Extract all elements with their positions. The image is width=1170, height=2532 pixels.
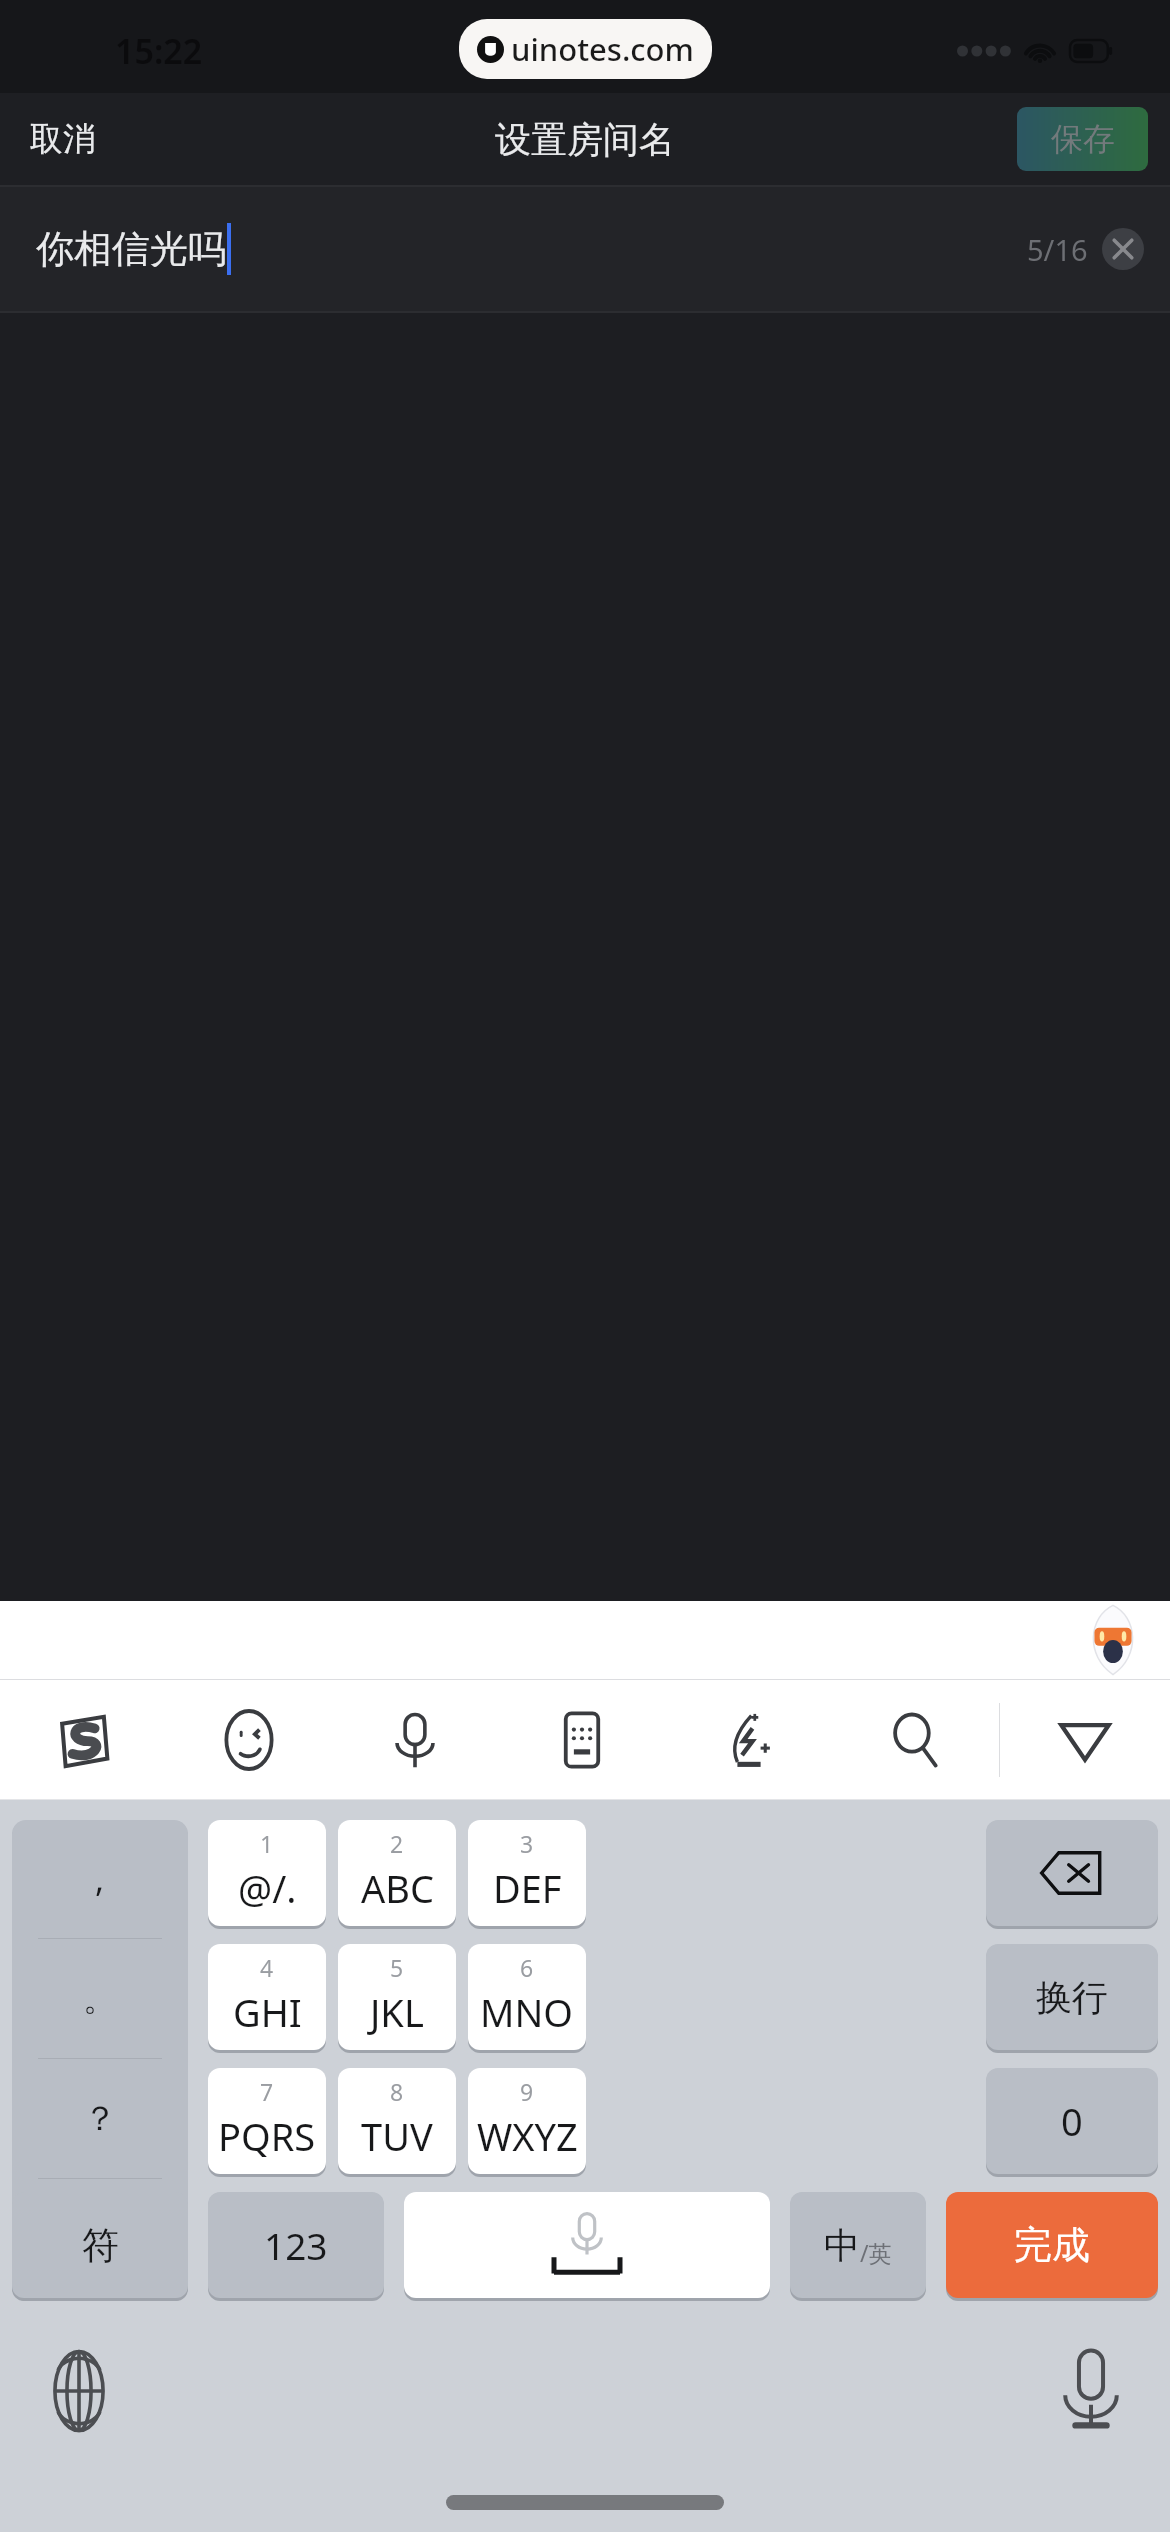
- staticText: 保存: [1051, 119, 1115, 159]
- staticText: /英: [860, 2237, 892, 2268]
- button[interactable]: Sogou keyboard: [0, 1680, 166, 1800]
- button[interactable]: 6 MNO: [468, 1944, 586, 2050]
- button[interactable]: 3 DEF: [468, 1820, 586, 1926]
- button[interactable]: Voice input: [1048, 2348, 1134, 2434]
- staticText: DEF: [493, 1862, 562, 1914]
- button[interactable]: 取消: [0, 102, 126, 176]
- button[interactable]: 4 GHI: [208, 1944, 326, 2050]
- button[interactable]: 9 WXYZ: [468, 2068, 586, 2174]
- staticText: ABC: [361, 1862, 434, 1914]
- button[interactable]: 保存: [1017, 107, 1148, 171]
- staticText: 完成: [1014, 2221, 1090, 2269]
- button[interactable]: Hide keyboard: [1000, 1680, 1170, 1800]
- staticText: 2: [390, 1828, 404, 1859]
- staticText: 5: [390, 1952, 404, 1983]
- staticText: PQRS: [218, 2110, 316, 2162]
- staticText: 4: [260, 1952, 274, 1983]
- button[interactable]: Keypad layout: [498, 1680, 665, 1800]
- staticText: MNO: [480, 1986, 574, 2038]
- staticText: 8: [390, 2076, 404, 2107]
- button[interactable]: 换行: [986, 1944, 1158, 2050]
- button[interactable]: 0: [986, 2068, 1158, 2174]
- button[interactable]: 符: [12, 2192, 188, 2298]
- staticText: 1: [260, 1828, 274, 1859]
- button[interactable]: Punctuation: [12, 1820, 188, 2298]
- staticText: uinotes.com: [511, 28, 694, 70]
- button[interactable]: Switch language: [36, 2348, 122, 2434]
- staticText: 3: [520, 1828, 534, 1859]
- staticText: JKL: [370, 1986, 424, 2038]
- staticText: 符: [82, 2222, 119, 2269]
- button[interactable]: Emoji: [166, 1680, 332, 1800]
- button[interactable]: Delete: [986, 1820, 1158, 1926]
- staticText: 中: [824, 2223, 860, 2268]
- button[interactable]: Sticker assistant: [1084, 1604, 1142, 1676]
- staticText: 换行: [1036, 1975, 1108, 2020]
- staticText: GHI: [233, 1986, 302, 2038]
- button[interactable]: 123: [208, 2192, 384, 2298]
- staticText: 0: [1061, 2095, 1083, 2147]
- staticText: ？: [83, 2097, 117, 2140]
- button[interactable]: 完成: [946, 2192, 1158, 2298]
- staticText: 123: [264, 2220, 328, 2270]
- staticText: 你相信光吗: [36, 225, 226, 273]
- button[interactable]: 7 PQRS: [208, 2068, 326, 2174]
- staticText: 6: [520, 1952, 534, 1983]
- button[interactable]: Voice input: [332, 1680, 498, 1800]
- button[interactable]: Handwriting: [665, 1680, 832, 1800]
- button[interactable]: 8 TUV: [338, 2068, 456, 2174]
- staticText: 设置房间名: [495, 117, 675, 162]
- staticText: 5/16: [1027, 230, 1088, 269]
- staticText: @/.: [238, 1862, 297, 1914]
- staticText: WXYZ: [477, 2110, 578, 2162]
- button[interactable]: Space: [404, 2192, 770, 2298]
- staticText: 7: [260, 2076, 274, 2107]
- button[interactable]: Search: [832, 1680, 999, 1800]
- staticText: 9: [520, 2076, 534, 2107]
- button[interactable]: Clear text: [1102, 228, 1144, 270]
- button[interactable]: 5 JKL: [338, 1944, 456, 2050]
- button[interactable]: 1 @/.: [208, 1820, 326, 1926]
- staticText: 。: [83, 1977, 117, 2020]
- button[interactable]: Chinese English toggle: [790, 2192, 926, 2298]
- button[interactable]: 2 ABC: [338, 1820, 456, 1926]
- staticText: ！: [83, 2217, 117, 2260]
- staticText: 15:22: [115, 28, 203, 74]
- staticText: TUV: [361, 2110, 433, 2162]
- staticText: ,: [95, 1856, 105, 1902]
- staticText: 取消: [30, 118, 96, 160]
